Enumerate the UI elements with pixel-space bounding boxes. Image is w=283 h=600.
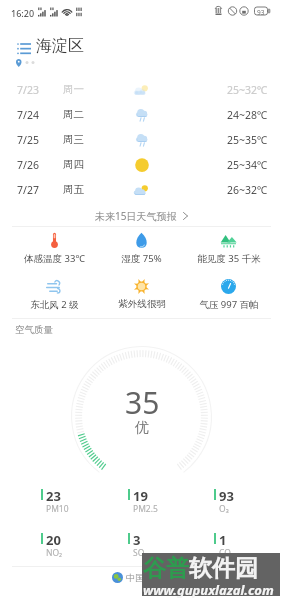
- staticText: 93: [257, 8, 265, 17]
- staticText: 25~32℃: [227, 83, 268, 97]
- button[interactable]: 气压 997 百帕: [186, 276, 271, 318]
- staticText: 7/23: [17, 83, 39, 97]
- staticText: 空气质量: [15, 324, 53, 336]
- staticText: 1: [219, 531, 227, 549]
- staticText: 周二: [63, 108, 84, 121]
- staticText: 35: [125, 382, 160, 423]
- staticText: 未来15日天气预报: [95, 209, 177, 223]
- staticText: 中国天气网: [126, 572, 171, 583]
- button[interactable]: City list: [8, 32, 90, 58]
- staticText: CO: [219, 547, 231, 559]
- staticText: PM2.5: [133, 503, 158, 515]
- other: City list: [17, 43, 31, 54]
- staticText: 优: [135, 419, 149, 437]
- button[interactable]: 3: [120, 528, 200, 560]
- button[interactable]: 体感温度 33℃: [12, 230, 97, 272]
- button[interactable]: 7/24: [0, 103, 283, 128]
- staticText: 23: [46, 487, 61, 505]
- staticText: 7/24: [17, 108, 39, 122]
- button[interactable]: 东北风 2 级: [12, 276, 97, 318]
- staticText: 谷普: [143, 554, 189, 583]
- staticText: 20: [46, 531, 61, 549]
- button[interactable]: 7/26: [0, 153, 283, 178]
- button[interactable]: 93: [206, 484, 283, 516]
- staticText: 软件园: [189, 554, 258, 583]
- staticText: NO₂: [46, 547, 63, 559]
- staticText: PM10: [46, 503, 69, 515]
- button[interactable]: 能见度 35 千米: [186, 230, 271, 272]
- staticText: 26~32℃: [227, 183, 268, 197]
- staticText: 3: [133, 531, 141, 549]
- staticText: SO₂: [133, 547, 148, 559]
- staticText: 7/27: [17, 183, 39, 197]
- staticText: 体感温度 33℃: [24, 252, 85, 265]
- staticText: 7/25: [17, 133, 39, 147]
- button[interactable]: 23: [33, 484, 113, 516]
- staticText: 7/26: [17, 158, 39, 172]
- button[interactable]: 7/27: [0, 178, 283, 203]
- staticText: www.gupuxlazal.com: [143, 581, 274, 599]
- staticText: 湿度 75%: [121, 252, 162, 265]
- button[interactable]: 湿度 75%: [99, 230, 184, 272]
- staticText: 能见度 35 千米: [197, 252, 261, 265]
- button[interactable]: 未来15日天气预报: [0, 205, 283, 226]
- staticText: 16:20: [11, 7, 35, 19]
- staticText: 东北风 2 级: [30, 298, 79, 311]
- staticText: 周四: [63, 158, 84, 171]
- staticText: 24~28℃: [227, 108, 268, 122]
- staticText: 周五: [63, 183, 84, 196]
- staticText: 周三: [63, 133, 84, 146]
- staticText: 紫外线很弱: [118, 298, 166, 310]
- staticText: 25~35℃: [227, 133, 268, 147]
- staticText: 海淀区: [36, 36, 84, 56]
- staticText: O₃: [219, 503, 229, 515]
- staticText: 气压 997 百帕: [199, 298, 259, 311]
- staticText: 25~34℃: [227, 158, 268, 172]
- other: Source: [112, 572, 123, 583]
- staticText: 周一: [63, 83, 84, 96]
- staticText: 93: [219, 487, 234, 505]
- staticText: 19: [133, 487, 148, 505]
- button[interactable]: 7/25: [0, 128, 283, 153]
- button[interactable]: 7/23: [0, 78, 283, 103]
- button[interactable]: 1: [206, 528, 283, 560]
- button[interactable]: 19: [120, 484, 200, 516]
- button[interactable]: 紫外线很弱: [99, 276, 184, 318]
- button[interactable]: 20: [33, 528, 113, 560]
